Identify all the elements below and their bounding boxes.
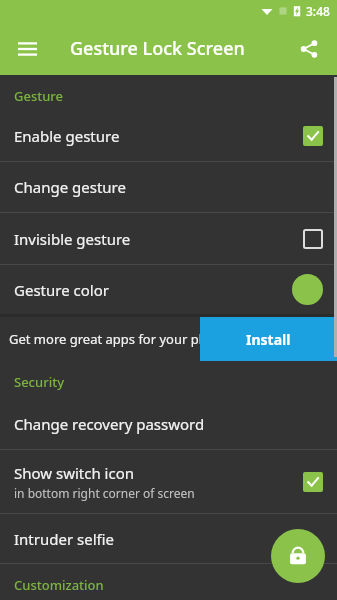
button[interactable]: Enable gesture (0, 111, 337, 161)
staticText: Enable gesture (14, 126, 120, 146)
button[interactable]: Change recovery password (0, 399, 337, 449)
button[interactable]: Share (290, 30, 328, 68)
staticText: Change gesture (14, 177, 126, 197)
staticText: Show switch icon (14, 463, 135, 483)
staticText: Invisible gesture (14, 229, 131, 249)
button[interactable]: Intruder selfie (0, 514, 337, 563)
staticText: Change recovery password (14, 414, 205, 434)
staticText: Intruder selfie (14, 529, 115, 549)
button[interactable]: Install (200, 317, 337, 361)
staticText: Security (14, 373, 64, 391)
staticText: in bottom right corner of screen (14, 485, 195, 501)
staticText: Gesture Lock Screen (70, 36, 245, 61)
button[interactable]: Invisible gesture (0, 213, 337, 264)
staticText: Gesture color (14, 280, 109, 300)
button[interactable]: Open navigation drawer (8, 30, 46, 68)
button[interactable]: Gesture color (0, 265, 337, 314)
button[interactable]: Lock now (271, 529, 325, 583)
button[interactable]: Change gesture (0, 162, 337, 212)
staticText: Customization (14, 576, 104, 594)
staticText: Get more great apps for your phone (9, 330, 231, 348)
button[interactable]: Show switch icon (0, 450, 337, 513)
staticText: Install (246, 330, 291, 349)
staticText: Gesture (14, 87, 64, 105)
staticText: 3:48 (306, 3, 330, 19)
